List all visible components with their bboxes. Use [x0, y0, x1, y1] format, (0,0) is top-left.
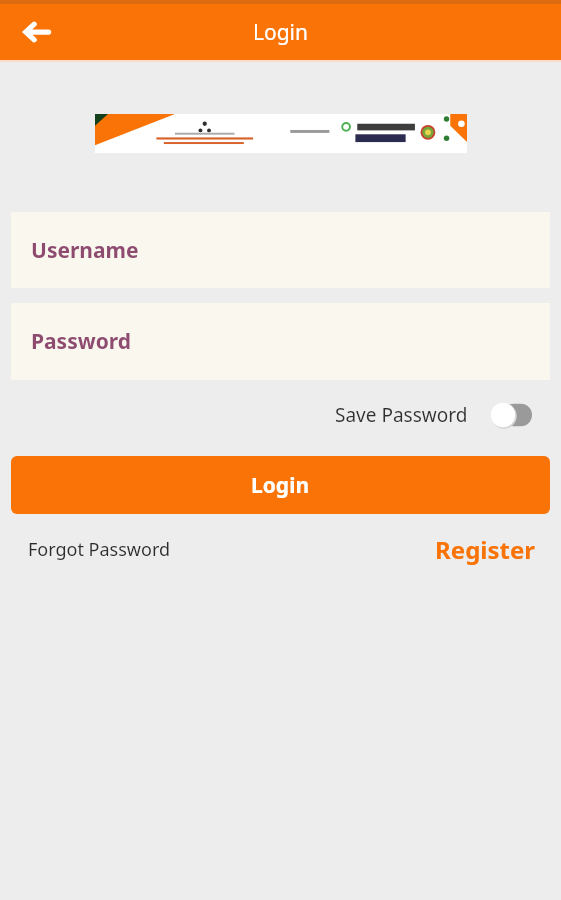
- staticText: Forgot Password: [28, 537, 171, 562]
- staticText: Save Password: [335, 402, 468, 428]
- button[interactable]: Forgot Password: [0, 533, 177, 566]
- button[interactable]: Username: [11, 212, 550, 288]
- button[interactable]: Login: [11, 456, 550, 514]
- staticText: Username: [31, 236, 139, 265]
- button[interactable]: Register: [429, 529, 561, 570]
- button[interactable]: Password: [11, 303, 550, 380]
- button[interactable]: Back: [12, 8, 60, 56]
- staticText: Login: [253, 18, 309, 47]
- staticText: Login: [251, 471, 310, 500]
- button[interactable]: Save Password: [327, 402, 532, 428]
- staticText: Register: [435, 533, 535, 566]
- button[interactable]: Advertisement banner: [95, 114, 467, 153]
- staticText: Password: [31, 327, 132, 356]
